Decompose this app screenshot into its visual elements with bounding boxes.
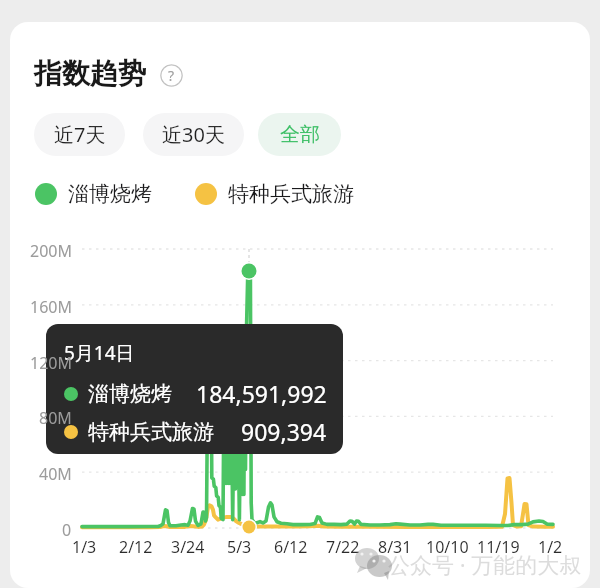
staticText: 40M [39,463,72,485]
staticText: 5/3 [227,536,252,558]
staticText: ? [168,66,175,85]
staticText: 8/31 [378,536,412,558]
button[interactable]: 近7天 [34,113,125,156]
staticText: 6/12 [274,536,308,558]
staticText: 2/12 [119,536,153,558]
button[interactable]: 帮助说明 [160,64,183,87]
button[interactable]: 淄博烧烤 [35,181,152,207]
staticText: 近7天 [54,121,106,148]
staticText: 3/24 [171,536,205,558]
staticText: 1/2 [538,536,563,558]
button[interactable]: 特种兵式旅游 [195,181,354,207]
staticText: 全部 [280,122,320,147]
staticText: 160M [30,296,72,318]
staticText: 0 [62,519,72,541]
staticText: 80M [39,407,72,429]
staticText: 200M [30,240,72,262]
staticText: 淄博烧烤 [68,181,152,207]
staticText: 5月14日 [64,340,135,366]
button[interactable]: 近30天 [143,113,244,156]
staticText: 近30天 [162,121,225,148]
button[interactable]: 全部 [258,113,341,156]
staticText: 特种兵式旅游 [228,181,354,207]
staticText: 淄博烧烤 [88,381,172,407]
staticText: 120M [30,352,72,374]
staticText: 1/3 [72,536,97,558]
staticText: 公众号 · 万能的大叔 [388,549,582,579]
staticText: 指数趋势 [34,56,146,91]
staticText: 909,394 [241,416,327,447]
staticText: 特种兵式旅游 [88,419,214,445]
staticText: 11/19 [477,536,520,558]
staticText: 184,591,992 [196,378,327,409]
staticText: 10/10 [426,536,469,558]
staticText: 7/22 [326,536,360,558]
